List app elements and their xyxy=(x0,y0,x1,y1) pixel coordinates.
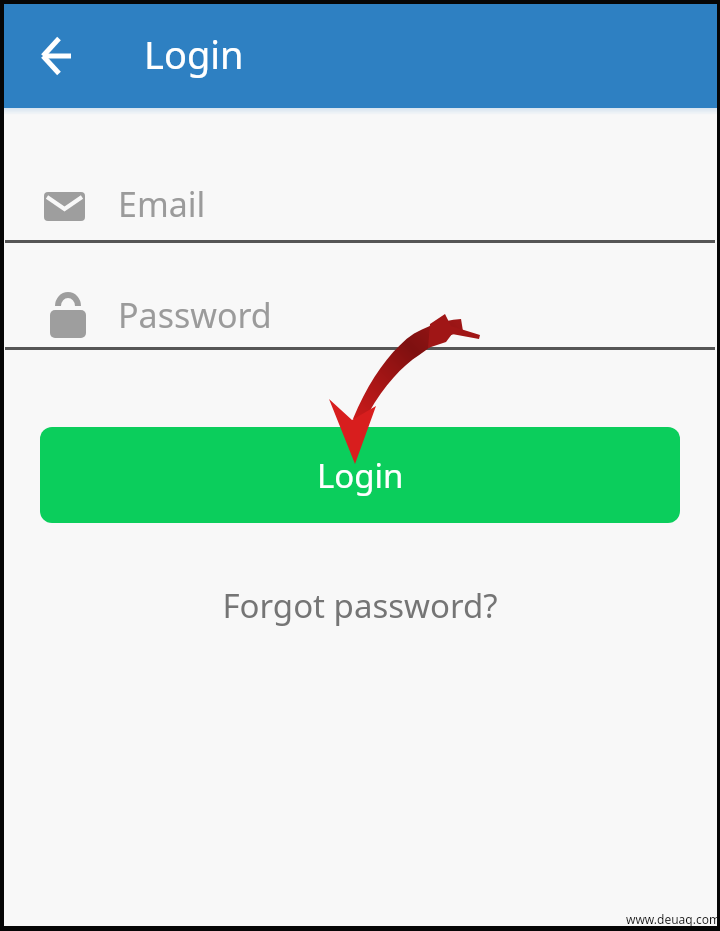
button[interactable]: Email xyxy=(0,170,720,244)
staticText: Forgot password? xyxy=(222,583,498,628)
staticText: Login xyxy=(144,28,244,80)
staticText: Password xyxy=(118,292,272,338)
button[interactable]: Password xyxy=(0,278,720,352)
staticText: www.deuaq.com xyxy=(626,911,720,927)
button[interactable] xyxy=(32,30,82,82)
staticText: Email xyxy=(118,181,206,227)
button[interactable]: Login xyxy=(40,427,680,523)
staticText: Login xyxy=(317,453,404,498)
button[interactable]: Forgot password? xyxy=(210,580,510,630)
